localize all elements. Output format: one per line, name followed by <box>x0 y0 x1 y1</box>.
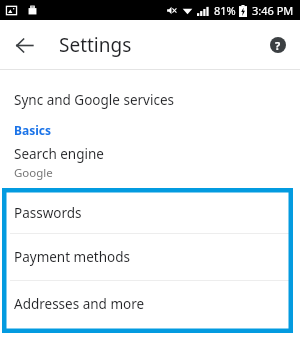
button[interactable]: Passwords <box>0 192 300 233</box>
staticText: Payment methods <box>14 248 130 266</box>
button[interactable]: Sync and Google services <box>0 83 300 117</box>
button[interactable]: Addresses and more <box>0 281 300 327</box>
staticText: Passwords <box>14 204 82 222</box>
staticText: 81% <box>214 3 236 18</box>
staticText: Basics <box>14 122 51 138</box>
staticText: Google <box>14 165 53 181</box>
button[interactable]: Search engine <box>0 143 300 183</box>
button[interactable]: Payment methods <box>0 234 300 280</box>
staticText: Search engine <box>14 145 104 163</box>
staticText: Addresses and more <box>14 295 145 313</box>
staticText: ? <box>275 38 281 53</box>
staticText: Settings <box>59 32 132 58</box>
button[interactable]: Back <box>6 27 42 63</box>
staticText: Sync and Google services <box>14 91 174 109</box>
button[interactable]: Help <box>261 28 295 62</box>
staticText: 3:46 PM <box>252 3 294 18</box>
